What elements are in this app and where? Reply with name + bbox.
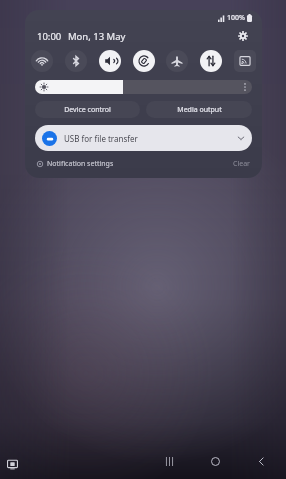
button[interactable]: Smart View — [234, 50, 256, 72]
button[interactable]: Clear — [233, 159, 250, 169]
button[interactable]: Bluetooth — [65, 50, 87, 72]
button[interactable]: Notification settings — [37, 159, 114, 169]
staticText: Clear — [233, 159, 250, 169]
button[interactable]: Airplane mode — [166, 50, 188, 72]
button[interactable]: Home — [202, 449, 228, 473]
button[interactable]: Sound — [99, 50, 121, 72]
button[interactable]: Settings — [235, 28, 251, 44]
button[interactable]: Brightness — [35, 80, 252, 94]
staticText: Media output — [177, 105, 222, 115]
button[interactable]: USB for file transfer — [35, 125, 252, 151]
staticText: Mon, 13 May — [68, 30, 126, 43]
button[interactable]: Recents — [156, 449, 182, 473]
button[interactable]: Back — [248, 449, 274, 473]
button[interactable]: Wi-Fi — [31, 50, 53, 72]
staticText: Device control — [64, 105, 111, 115]
button[interactable]: Screenshot — [5, 457, 19, 471]
staticText: Notification settings — [47, 159, 114, 169]
staticText: USB for file transfer — [64, 133, 138, 144]
button[interactable]: Media output — [146, 101, 252, 118]
staticText: 100% — [227, 13, 245, 23]
staticText: 10:00 — [37, 30, 62, 43]
button[interactable]: Auto rotate — [133, 50, 155, 72]
button[interactable]: Mobile data — [200, 50, 222, 72]
button[interactable]: Device control — [35, 101, 140, 118]
